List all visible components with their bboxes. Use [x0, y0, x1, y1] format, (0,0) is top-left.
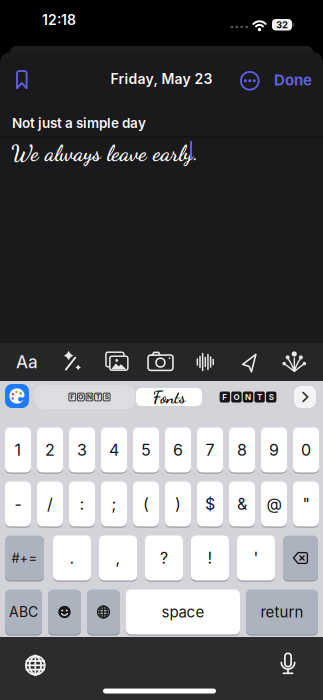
button[interactable]: (	[133, 481, 159, 527]
staticText: N	[87, 393, 92, 401]
button[interactable]	[138, 343, 183, 381]
staticText: O	[233, 392, 239, 402]
staticText: space	[161, 603, 204, 621]
staticText: F	[70, 393, 74, 401]
button[interactable]: -	[5, 481, 31, 527]
staticText: O	[78, 393, 83, 401]
button[interactable]	[15, 69, 29, 90]
button[interactable]	[49, 343, 94, 381]
button[interactable]	[25, 655, 46, 676]
staticText: Not just a simple day	[12, 115, 146, 131]
staticText: ,	[115, 548, 120, 568]
staticText: /	[47, 494, 53, 514]
staticText: T	[257, 392, 262, 402]
button[interactable]: Fonts	[136, 388, 202, 406]
button[interactable]: :	[69, 481, 95, 527]
button[interactable]: ?	[145, 535, 183, 581]
staticText: ABC	[9, 603, 38, 620]
staticText: Fonts	[152, 387, 185, 407]
staticText: Done	[274, 71, 312, 89]
button[interactable]	[294, 386, 316, 408]
staticText: $	[205, 494, 215, 514]
button[interactable]	[272, 343, 316, 381]
staticText: S	[269, 392, 274, 402]
staticText: :	[79, 494, 84, 514]
button[interactable]: )	[165, 481, 191, 527]
staticText: N	[245, 392, 251, 402]
staticText: 7	[205, 440, 214, 460]
staticText: 0	[301, 440, 311, 460]
staticText: 6	[173, 440, 183, 460]
staticText: 3	[77, 440, 87, 460]
button[interactable]: ,	[99, 535, 137, 581]
button[interactable]: ;	[101, 481, 127, 527]
button[interactable]	[48, 589, 81, 635]
button[interactable]: &	[229, 481, 255, 527]
staticText: 32	[276, 19, 288, 30]
staticText: We always leave early.	[11, 140, 198, 166]
staticText: 8	[237, 440, 247, 460]
staticText: 9	[269, 440, 279, 460]
staticText: 2	[45, 440, 55, 460]
staticText: -	[14, 494, 21, 514]
button[interactable]	[227, 343, 272, 381]
button[interactable]: space	[126, 589, 240, 635]
button[interactable]: 4	[101, 427, 127, 473]
staticText: Aa	[16, 352, 38, 372]
staticText: 1	[14, 440, 21, 460]
button[interactable]: #+=	[5, 535, 44, 581]
button[interactable]: Done	[274, 71, 312, 89]
button[interactable]: "	[293, 481, 319, 527]
button[interactable]: !	[191, 535, 229, 581]
button[interactable]	[94, 343, 138, 381]
staticText: '	[253, 548, 258, 568]
button[interactable]: F	[207, 385, 289, 409]
button[interactable]: 6	[165, 427, 191, 473]
staticText: !	[207, 548, 212, 568]
staticText: S	[105, 393, 109, 401]
button[interactable]	[240, 71, 260, 91]
staticText: T	[96, 393, 100, 401]
button[interactable]: $	[197, 481, 223, 527]
button[interactable]: 7	[197, 427, 223, 473]
staticText: )	[175, 494, 181, 514]
staticText: return	[260, 603, 303, 621]
staticText: .	[69, 548, 74, 568]
staticText: (	[143, 494, 149, 514]
staticText: 4	[109, 440, 119, 460]
button[interactable]: '	[237, 535, 275, 581]
button[interactable]: 2	[37, 427, 63, 473]
button[interactable]: @	[261, 481, 287, 527]
button[interactable]: Aa	[5, 343, 49, 381]
staticText: @	[266, 494, 281, 514]
staticText: "	[302, 494, 309, 514]
button[interactable]: /	[37, 481, 63, 527]
staticText: 5	[141, 440, 151, 460]
button[interactable]: 3	[69, 427, 95, 473]
button[interactable]	[279, 652, 297, 677]
staticText: 12:18	[42, 11, 76, 28]
staticText: ?	[160, 548, 168, 568]
staticText: Friday, May 23	[110, 70, 212, 87]
button[interactable]: .	[53, 535, 91, 581]
button[interactable]	[5, 384, 29, 408]
button[interactable]: 5	[133, 427, 159, 473]
button[interactable]	[283, 535, 318, 581]
button[interactable]	[87, 589, 120, 635]
button[interactable]: 9	[261, 427, 287, 473]
button[interactable]: 0	[293, 427, 319, 473]
button[interactable]: return	[246, 589, 318, 635]
button[interactable]: ABC	[5, 589, 42, 635]
staticText: #+=	[11, 550, 37, 566]
button[interactable]	[183, 343, 227, 381]
button[interactable]: F	[34, 385, 135, 409]
button[interactable]: 1	[5, 427, 31, 473]
staticText: ;	[111, 494, 116, 514]
button[interactable]: 8	[229, 427, 255, 473]
staticText: F	[222, 392, 227, 402]
staticText: &	[237, 494, 247, 514]
